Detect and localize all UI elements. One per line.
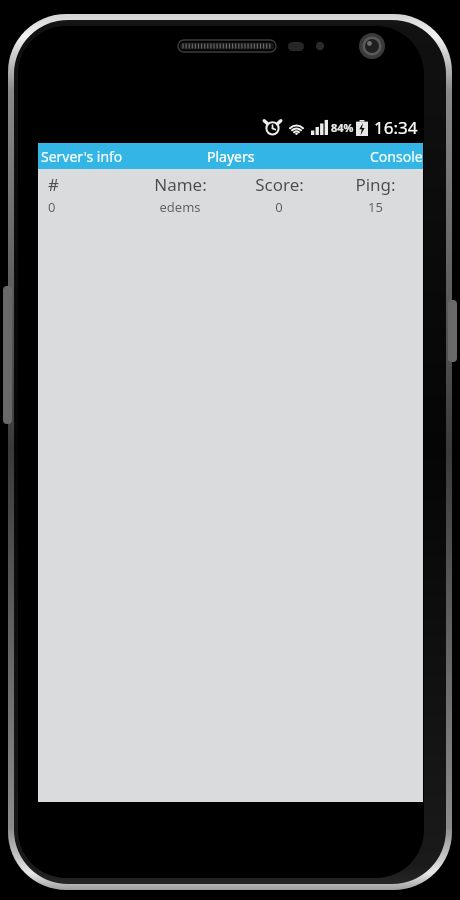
button[interactable]: Console	[333, 143, 423, 169]
staticText: #	[48, 173, 59, 196]
staticText: 16:34	[374, 116, 418, 139]
staticText: Server's info	[41, 147, 123, 166]
staticText: 0	[48, 198, 56, 216]
staticText: 0	[275, 198, 283, 216]
staticText: Ping:	[355, 173, 396, 196]
button[interactable]: 0	[38, 196, 423, 218]
staticText: Console	[370, 147, 423, 166]
staticText: Players	[207, 147, 255, 166]
staticText: edems	[159, 198, 201, 216]
staticText: 15	[368, 198, 383, 216]
staticText: Score:	[255, 173, 304, 196]
button[interactable]: Server's info	[38, 143, 166, 169]
staticText: Name:	[154, 173, 207, 196]
staticText: 84%	[331, 120, 354, 135]
button[interactable]: Players	[171, 143, 291, 169]
